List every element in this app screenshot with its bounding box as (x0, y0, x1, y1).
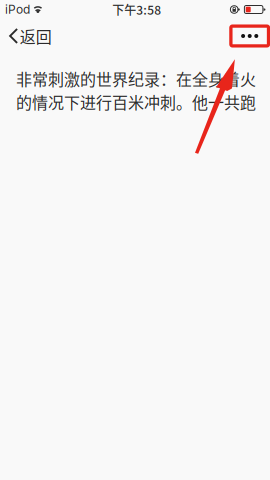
staticText: 下午3:58 (112, 1, 161, 18)
staticText: iPod (5, 2, 30, 17)
staticText: 非常刺激的世界纪录：在全身着火的情况下进行百米冲刺。他一共跑 (16, 67, 256, 113)
button[interactable]: 返回 (0, 19, 60, 53)
staticText: 返回 (20, 24, 52, 48)
button[interactable]: More (231, 26, 268, 46)
